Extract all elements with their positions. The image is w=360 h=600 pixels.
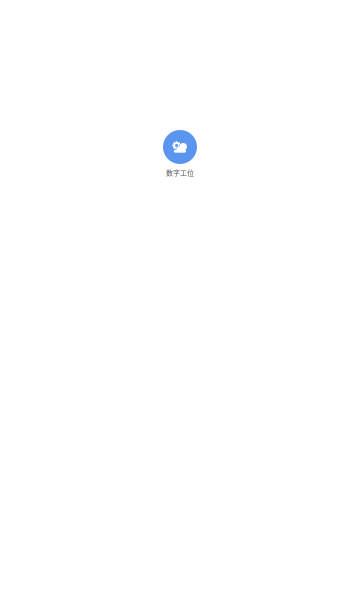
button[interactable]: 数字工位 <box>163 130 197 177</box>
staticText: 数字工位 <box>166 167 194 177</box>
